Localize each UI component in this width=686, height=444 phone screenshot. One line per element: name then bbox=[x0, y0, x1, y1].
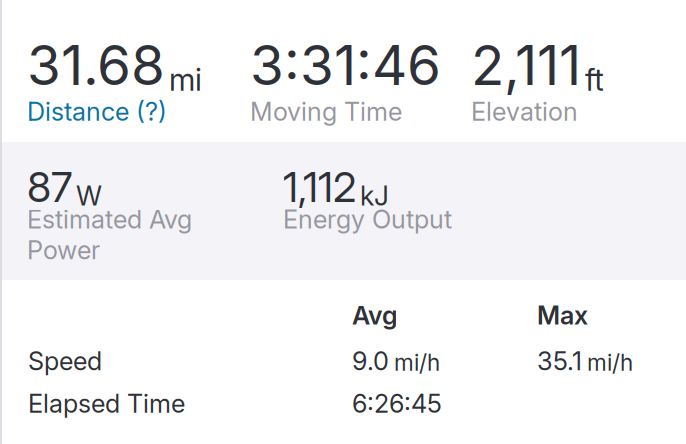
staticText: 35.1 bbox=[537, 346, 582, 376]
staticText: Avg bbox=[352, 300, 398, 331]
staticText: Max bbox=[537, 300, 588, 331]
button[interactable]: 31.68 bbox=[27, 32, 250, 127]
staticText: mi bbox=[169, 61, 202, 98]
staticText: 6:26:45 bbox=[352, 388, 442, 419]
staticText: 3:31:46 bbox=[250, 32, 441, 98]
staticText: ft bbox=[585, 61, 604, 98]
staticText: mi/h bbox=[394, 349, 440, 376]
staticText: 87 bbox=[27, 162, 72, 212]
staticText: W bbox=[76, 180, 102, 212]
staticText: Distance (?) bbox=[27, 96, 167, 127]
staticText: Estimated Avg Power bbox=[27, 204, 192, 265]
staticText: Speed bbox=[28, 346, 102, 376]
staticText: kJ bbox=[360, 180, 389, 212]
staticText: Elevation bbox=[471, 96, 578, 127]
staticText: Energy Output bbox=[283, 204, 452, 235]
staticText: Moving Time bbox=[250, 96, 402, 127]
staticText: Elapsed Time bbox=[28, 388, 185, 419]
staticText: mi/h bbox=[587, 349, 633, 376]
staticText: 2,111 bbox=[471, 32, 581, 98]
staticText: 9.0 bbox=[352, 346, 389, 376]
staticText: 31.68 bbox=[27, 32, 165, 98]
staticText: 1,112 bbox=[283, 162, 356, 212]
